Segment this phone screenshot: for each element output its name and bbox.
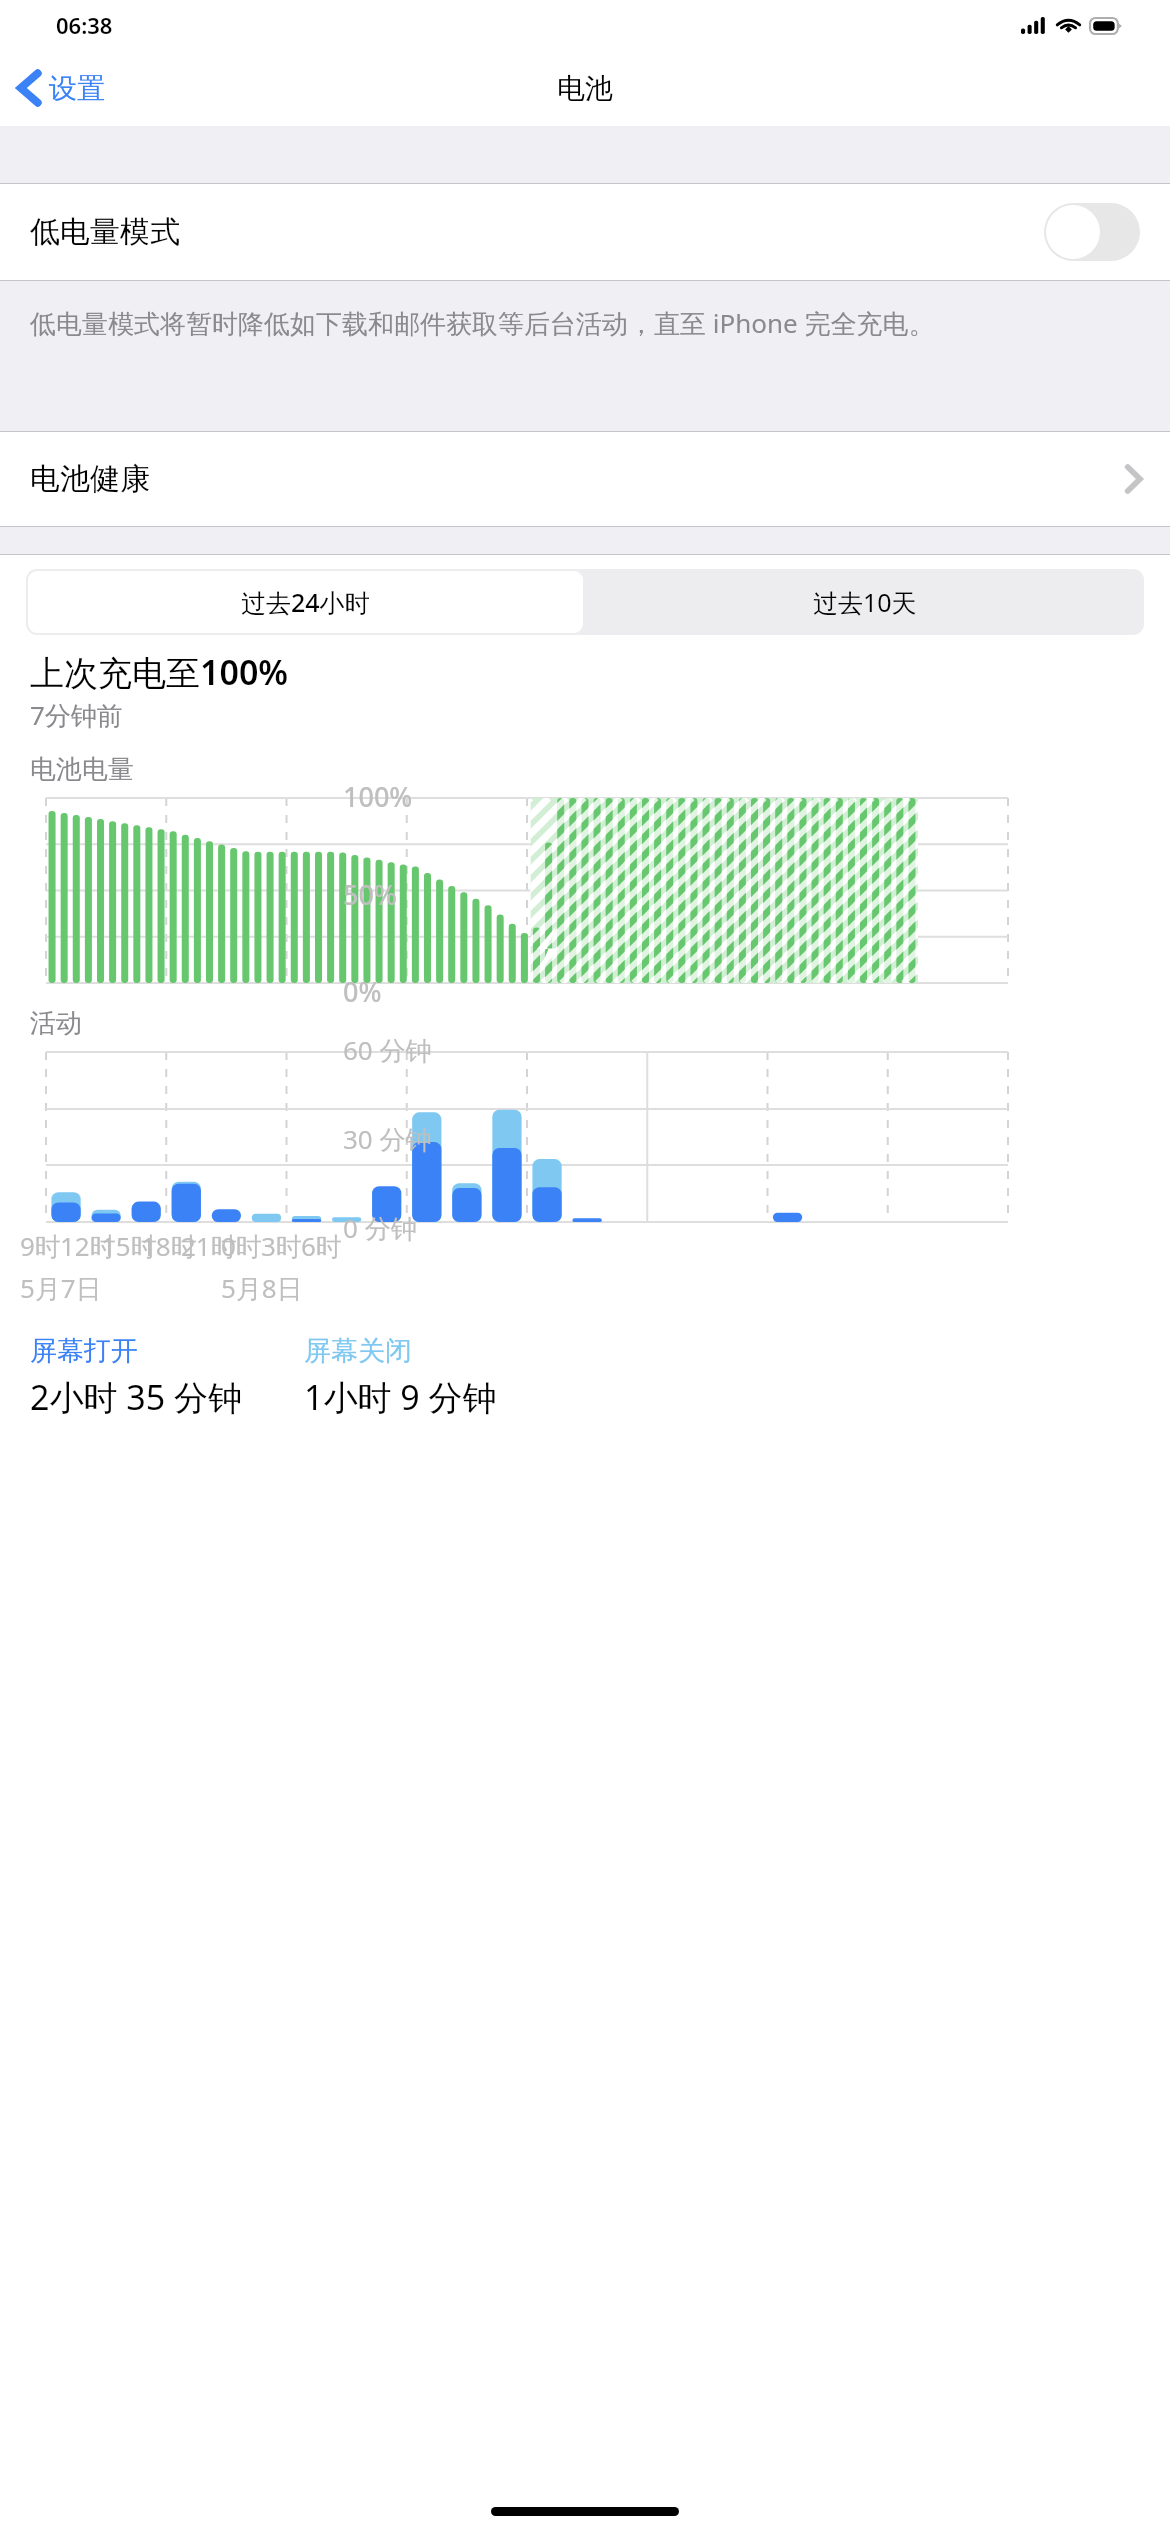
staticText: 0% (343, 973, 382, 1010)
staticText: 9时 (20, 1228, 61, 1264)
staticText: 30 分钟 (343, 1121, 432, 1157)
staticText: 过去10天 (813, 585, 917, 619)
staticText: 屏幕打开 (30, 1334, 138, 1368)
staticText: 3时 (261, 1228, 302, 1264)
button[interactable]: 低电量模式 (0, 184, 1170, 280)
staticText: 6时 (301, 1228, 342, 1264)
button[interactable]: 低电量模式开关，关闭 (1044, 203, 1140, 261)
staticText: 屏幕关闭 (304, 1334, 412, 1368)
staticText: 60 分钟 (343, 1032, 432, 1068)
staticText: 50% (343, 876, 397, 913)
staticText: 21时 (181, 1228, 237, 1264)
staticText: 电池健康 (30, 460, 1125, 498)
button[interactable]: 设置 (0, 60, 123, 116)
staticText: 5月8日 (221, 1270, 303, 1306)
button[interactable]: 过去10天 (585, 569, 1144, 635)
staticText: 电池 (557, 71, 613, 106)
button[interactable]: 过去24小时 (28, 571, 583, 633)
staticText: 5月7日 (20, 1270, 102, 1306)
staticText: 0 分钟 (343, 1210, 417, 1246)
staticText: 低电量模式 (30, 213, 1044, 251)
staticText: 电池电量 (30, 753, 134, 786)
staticText: 18时 (141, 1228, 197, 1264)
staticText: 1小时 9 分钟 (304, 1374, 497, 1420)
button[interactable]: 电池健康 (0, 432, 1170, 526)
staticText: 低电量模式将暂时降低如下载和邮件获取等后台活动，直至 iPhone 完全充电。 (30, 305, 935, 341)
staticText: 15时 (101, 1228, 157, 1264)
staticText: 7分钟前 (30, 697, 123, 733)
staticText: 2小时 35 分钟 (30, 1374, 243, 1420)
staticText: 设置 (49, 71, 105, 106)
staticText: 过去24小时 (241, 585, 370, 619)
staticText: 06:38 (56, 10, 113, 40)
staticText: 上次充电至100% (30, 649, 289, 695)
staticText: 100% (343, 778, 413, 815)
staticText: 活动 (30, 1007, 82, 1040)
staticText: 0时 (221, 1228, 262, 1264)
staticText: 12时 (60, 1228, 116, 1264)
